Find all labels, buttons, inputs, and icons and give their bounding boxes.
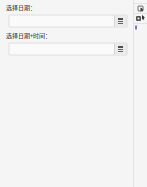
button[interactable]: 选择日期 [9, 15, 127, 27]
staticText: 选择日期： [6, 3, 36, 12]
button[interactable]: 选择日期加时间 [9, 43, 127, 55]
staticText: 选择日期+时间： [6, 31, 51, 40]
button[interactable]: Select region [134, 4, 147, 13]
button[interactable]: Pointer tool [134, 14, 147, 23]
